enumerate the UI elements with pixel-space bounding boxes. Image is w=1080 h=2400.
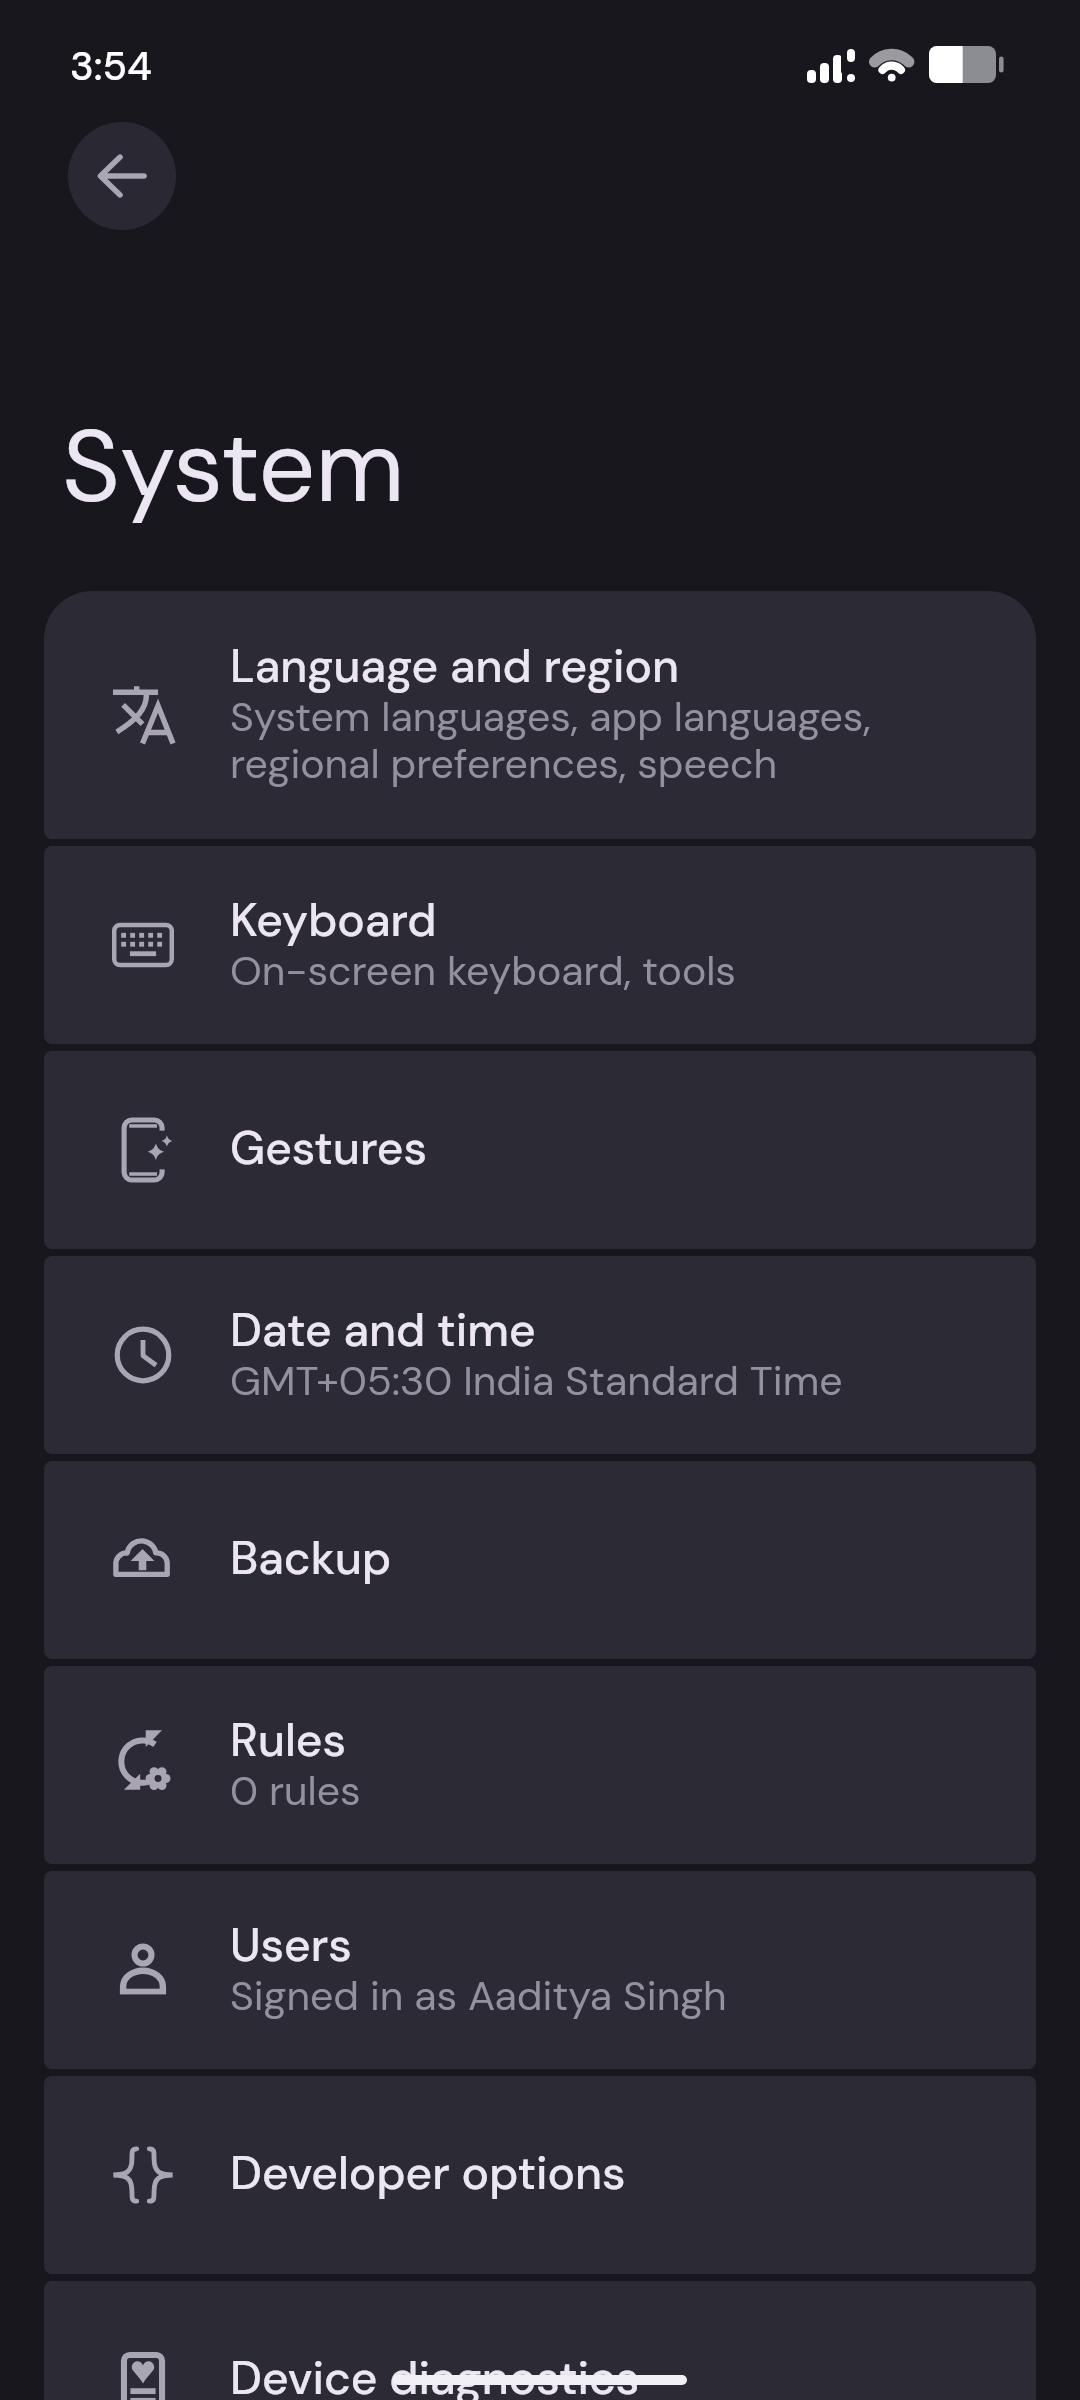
staticText: Date and time	[230, 1305, 536, 1359]
button[interactable]: Device diagnostics	[44, 2281, 1036, 2400]
staticText: System languages, app languages, regiona…	[230, 695, 871, 789]
button[interactable]: Gestures	[44, 1051, 1036, 1249]
staticText: Users	[230, 1920, 352, 1974]
staticText: 3:54	[70, 40, 152, 92]
staticText: Signed in as Aaditya Singh	[230, 1974, 727, 2021]
staticText: Backup	[230, 1533, 392, 1587]
button[interactable]: Backup	[44, 1461, 1036, 1659]
button[interactable]: Keyboard	[44, 846, 1036, 1044]
staticText: Gestures	[230, 1123, 428, 1177]
staticText: Developer options	[230, 2148, 626, 2202]
button[interactable]: Back	[68, 122, 176, 230]
staticText: GMT+05:30 India Standard Time	[230, 1359, 843, 1406]
button[interactable]: Users	[44, 1871, 1036, 2069]
staticText: System	[62, 402, 405, 532]
staticText: Language and region	[230, 641, 680, 695]
button[interactable]: Language and region	[44, 591, 1036, 839]
staticText: Rules	[230, 1715, 346, 1769]
staticText: 0 rules	[230, 1769, 361, 1816]
staticText: Device diagnostics	[230, 2353, 640, 2400]
staticText: Keyboard	[230, 895, 437, 949]
button[interactable]: Rules	[44, 1666, 1036, 1864]
staticText: On-screen keyboard, tools	[230, 949, 736, 996]
button[interactable]: Date and time	[44, 1256, 1036, 1454]
button[interactable]: Developer options	[44, 2076, 1036, 2274]
